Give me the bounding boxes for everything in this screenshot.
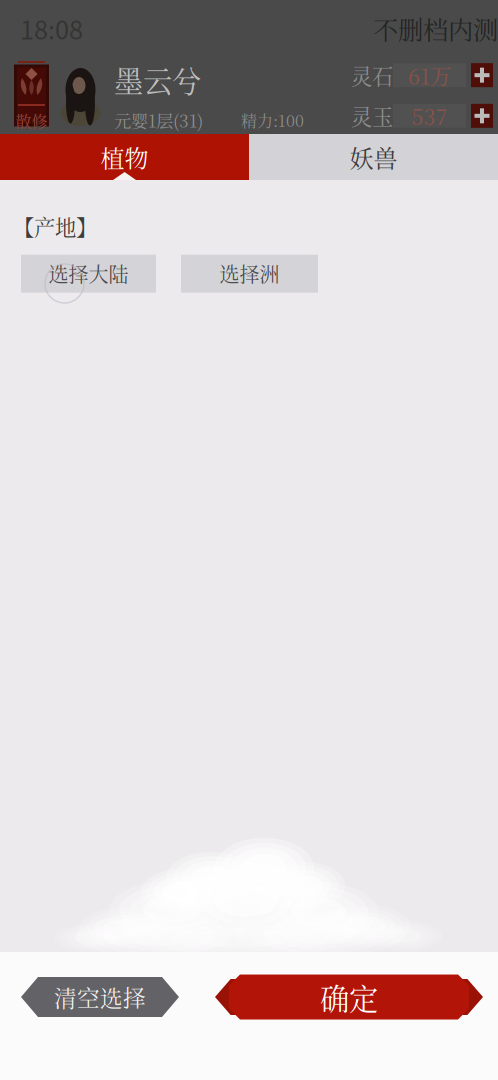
staticText: 清空选择 bbox=[54, 981, 146, 1013]
button[interactable]: 清空选择 bbox=[21, 977, 179, 1017]
button[interactable]: 选择洲 bbox=[181, 255, 318, 293]
staticText: 灵玉 bbox=[351, 100, 393, 131]
staticText: 元婴1层(31) bbox=[114, 108, 203, 132]
staticText: 墨云兮 bbox=[114, 58, 201, 101]
staticText: 植物 bbox=[100, 140, 148, 174]
staticText: 不删档内测 bbox=[373, 10, 498, 47]
staticText: 精力:100 bbox=[241, 109, 304, 132]
staticText: 选择洲 bbox=[219, 259, 279, 288]
staticText: 61万 bbox=[408, 60, 451, 90]
button[interactable]: 选择大陆 bbox=[21, 255, 156, 293]
button[interactable]: 植物 bbox=[0, 134, 249, 180]
staticText: 537 bbox=[411, 100, 447, 131]
button[interactable]: Add 灵玉 bbox=[471, 104, 493, 128]
button[interactable]: Add 灵石 bbox=[471, 63, 493, 87]
staticText: 妖兽 bbox=[349, 140, 397, 174]
staticText: 18:08 bbox=[20, 10, 83, 47]
staticText: 确定 bbox=[320, 976, 378, 1018]
staticText: 散修 bbox=[15, 109, 47, 132]
button[interactable]: 妖兽 bbox=[249, 134, 498, 180]
staticText: 选择大陆 bbox=[48, 259, 128, 288]
staticText: 灵石 bbox=[351, 60, 393, 90]
staticText: 【产地】 bbox=[13, 211, 97, 242]
button[interactable]: 确定 bbox=[215, 974, 483, 1020]
